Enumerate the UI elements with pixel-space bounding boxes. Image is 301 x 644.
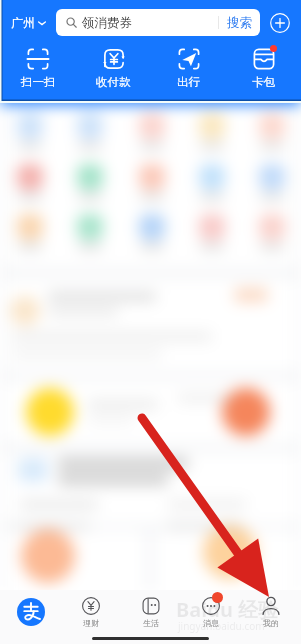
button[interactable]: 我的: [241, 590, 301, 634]
staticText: 理财: [83, 618, 99, 628]
button[interactable]: 扫一扫: [0, 47, 76, 92]
staticText: 我的: [263, 618, 279, 628]
staticText: 消息: [203, 618, 219, 628]
staticText: 扫一扫: [21, 75, 56, 89]
button[interactable]: 广州: [0, 9, 56, 36]
staticText: 领消费券: [82, 15, 132, 31]
button[interactable]: 出行: [151, 47, 226, 92]
button[interactable]: Home: [0, 590, 61, 634]
staticText: 出行: [177, 75, 200, 89]
button[interactable]: 生活: [121, 590, 181, 634]
staticText: 卡包: [252, 75, 275, 89]
staticText: jingyan.baidu.com: [178, 619, 265, 633]
button[interactable]: 理财: [61, 590, 121, 634]
button[interactable]: 收付款: [76, 47, 151, 92]
staticText: 搜索: [227, 15, 252, 31]
button[interactable]: Add: [270, 13, 290, 33]
button[interactable]: 卡包: [226, 47, 301, 92]
staticText: Baidu 经验: [176, 596, 279, 623]
button[interactable]: 消息: [181, 590, 241, 634]
button[interactable]: 领消费券: [56, 9, 260, 36]
staticText: 生活: [143, 618, 159, 628]
button[interactable]: 搜索: [219, 9, 260, 36]
staticText: 收付款: [96, 75, 131, 89]
staticText: 广州: [11, 15, 35, 30]
